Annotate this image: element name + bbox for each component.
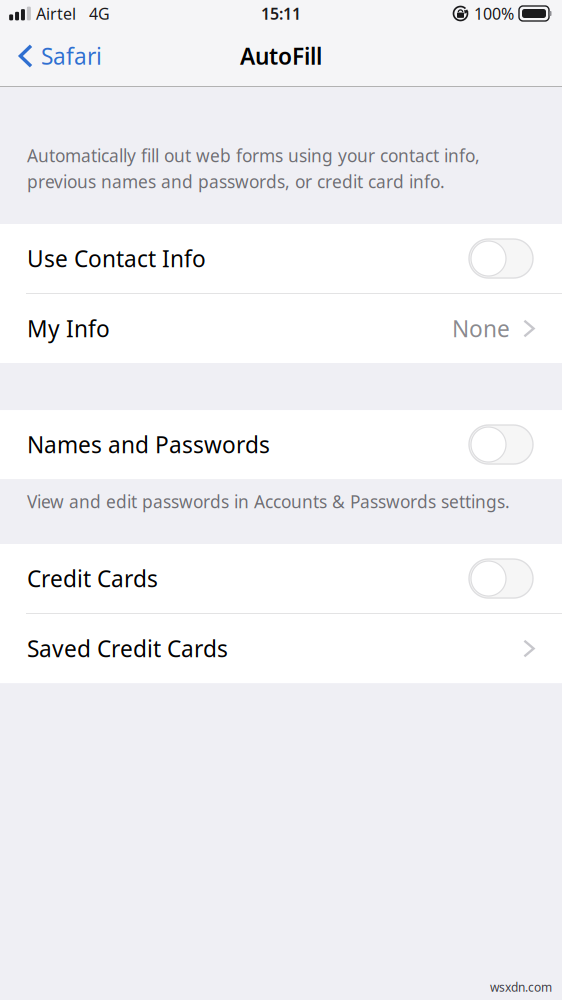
staticText: 15:11: [261, 3, 301, 24]
staticText: AutoFill: [240, 41, 322, 71]
staticText: My Info: [27, 313, 110, 344]
staticText: View and edit passwords in Accounts & Pa…: [27, 490, 510, 513]
staticText: wsxdn.com: [490, 979, 552, 995]
staticText: 100%: [474, 3, 514, 24]
staticText: Use Contact Info: [27, 243, 206, 274]
button[interactable]: Use Contact Info: [0, 224, 562, 293]
button[interactable]: My Info: [0, 294, 562, 363]
staticText: Safari: [41, 41, 102, 71]
staticText: Automatically fill out web forms using y…: [27, 144, 480, 193]
button[interactable]: Names and Passwords: [0, 410, 562, 479]
staticText: None: [452, 313, 510, 344]
button[interactable]: Saved Credit Cards: [0, 614, 562, 683]
staticText: Names and Passwords: [27, 429, 270, 460]
staticText: 4G: [89, 3, 110, 24]
staticText: Airtel: [36, 3, 76, 24]
button[interactable]: Credit Cards: [0, 544, 562, 613]
button[interactable]: Safari: [0, 34, 114, 78]
staticText: Credit Cards: [27, 563, 158, 594]
staticText: Saved Credit Cards: [27, 633, 228, 664]
